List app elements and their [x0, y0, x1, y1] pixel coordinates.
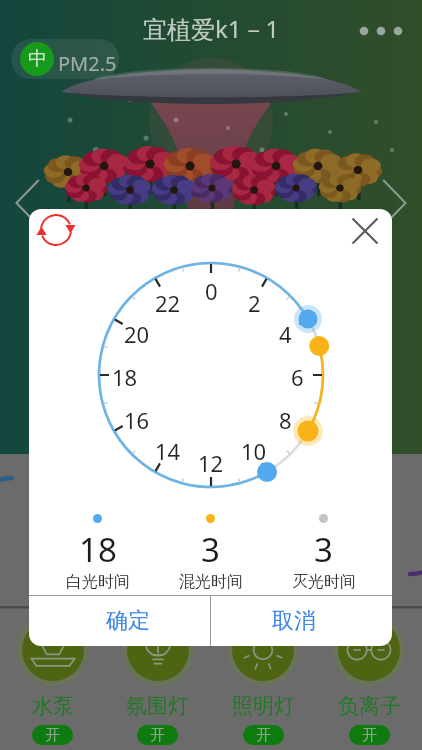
staticText: 8	[279, 405, 292, 431]
button[interactable]: 确定	[29, 596, 210, 646]
button[interactable]: Refresh	[35, 209, 77, 251]
staticText: 12	[198, 448, 224, 474]
staticText: 照明灯	[232, 693, 295, 719]
button[interactable]: 中	[11, 39, 119, 79]
staticText: 18	[112, 362, 138, 388]
staticText: 中	[28, 47, 47, 71]
staticText: 4	[279, 319, 292, 345]
staticText: 开	[362, 726, 377, 745]
staticText: 2	[248, 288, 261, 314]
staticText: 3	[314, 527, 333, 572]
staticText: 负离子	[338, 693, 401, 719]
staticText: 混光时间	[179, 572, 243, 592]
staticText: 灭光时间	[292, 572, 356, 592]
staticText: 3	[201, 527, 220, 572]
staticText: 氛围灯	[126, 693, 189, 719]
staticText: 22	[155, 288, 181, 314]
staticText: 宜植爱k1－1	[143, 12, 280, 45]
staticText: 18	[79, 527, 117, 572]
staticText: 20	[124, 319, 150, 345]
button[interactable]: More options	[354, 19, 408, 43]
staticText: 开	[150, 726, 165, 745]
button[interactable]: Next	[376, 176, 412, 230]
staticText: 14	[155, 436, 181, 462]
button[interactable]: 水泵	[0, 614, 105, 750]
staticText: 确定	[106, 607, 150, 635]
button[interactable]: 取消	[211, 596, 392, 646]
staticText: 开	[45, 726, 60, 745]
button[interactable]: Close	[344, 210, 386, 252]
staticText: 开	[256, 726, 271, 745]
staticText: 6	[291, 362, 304, 388]
button[interactable]: 照明灯	[210, 614, 316, 750]
button[interactable]: 氛围灯	[105, 614, 210, 750]
staticText: 10	[241, 436, 267, 462]
button[interactable]: 负离子	[316, 614, 422, 750]
staticText: 取消	[272, 607, 316, 635]
button[interactable]: Previous	[10, 176, 46, 230]
staticText: 水泵	[32, 693, 74, 719]
staticText: 白光时间	[66, 572, 130, 592]
staticText: 0	[205, 276, 218, 302]
staticText: PM2.5	[58, 50, 117, 77]
staticText: 16	[124, 405, 150, 431]
